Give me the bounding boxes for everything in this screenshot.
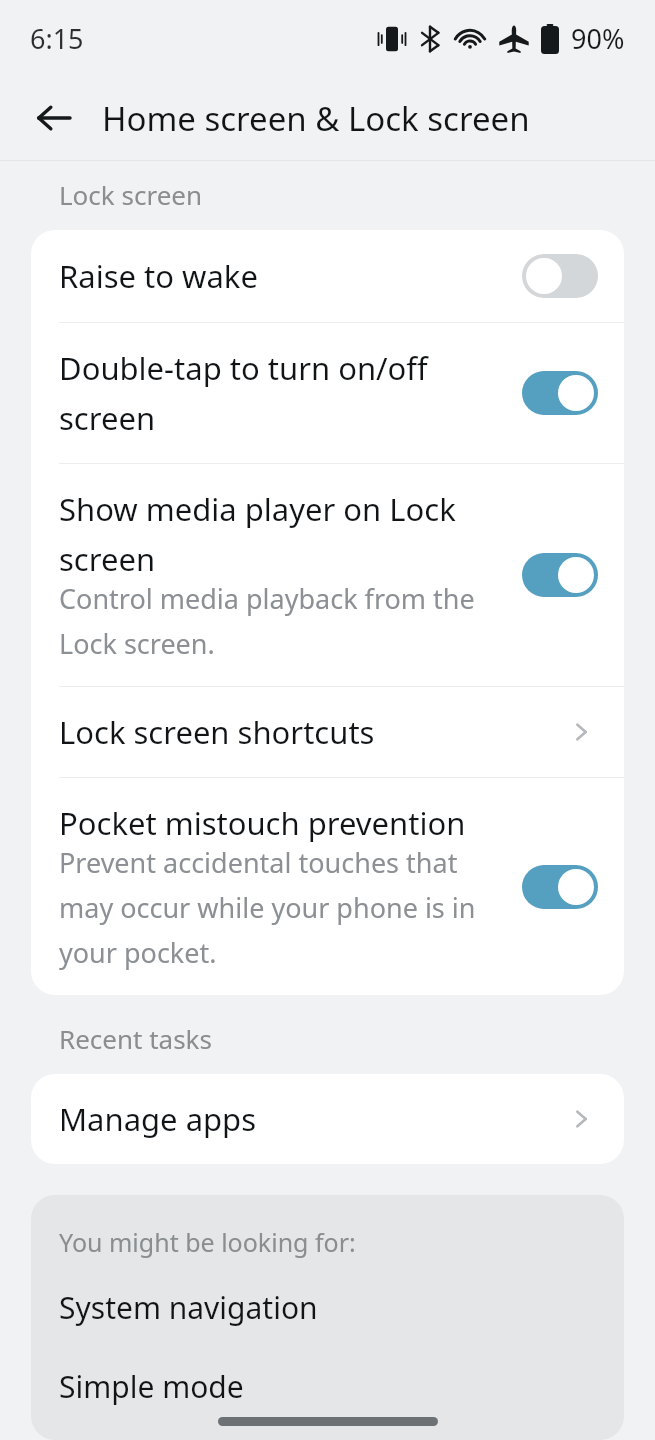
button[interactable]: System navigation <box>31 1287 624 1328</box>
staticText: Show media player on Lock screen <box>59 488 510 580</box>
staticText: Prevent accidental touches that may occu… <box>59 844 510 971</box>
button[interactable]: Show media player on Lock screen <box>31 464 624 686</box>
button[interactable]: Back <box>28 92 80 144</box>
staticText: Double-tap to turn on/off screen <box>59 347 510 439</box>
staticText: You might be looking for: <box>59 1225 356 1259</box>
button[interactable]: Raise to wake <box>31 230 624 322</box>
staticText: Pocket mistouch prevention <box>59 802 466 844</box>
staticText: Home screen & Lock screen <box>102 96 530 141</box>
button[interactable]: On <box>522 371 598 415</box>
button[interactable]: Off <box>522 254 598 298</box>
staticText: 6:15 <box>30 20 84 57</box>
staticText: Raise to wake <box>59 255 258 297</box>
button[interactable]: Double-tap to turn on/off screen <box>31 323 624 463</box>
staticText: System navigation <box>59 1287 318 1328</box>
staticText: Lock screen shortcuts <box>59 711 568 753</box>
button[interactable]: Pocket mistouch prevention <box>31 778 624 995</box>
button[interactable]: On <box>522 865 598 909</box>
button[interactable]: On <box>522 553 598 597</box>
staticText: 90% <box>571 20 625 57</box>
button[interactable]: Simple mode <box>31 1366 624 1407</box>
button[interactable]: Manage apps <box>31 1074 624 1164</box>
staticText: Manage apps <box>59 1098 568 1140</box>
staticText: Simple mode <box>59 1366 244 1407</box>
staticText: Recent tasks <box>59 1021 212 1056</box>
staticText: Control media playback from the Lock scr… <box>59 580 510 662</box>
staticText: Lock screen <box>59 177 203 212</box>
button[interactable]: Lock screen shortcuts <box>31 687 624 777</box>
